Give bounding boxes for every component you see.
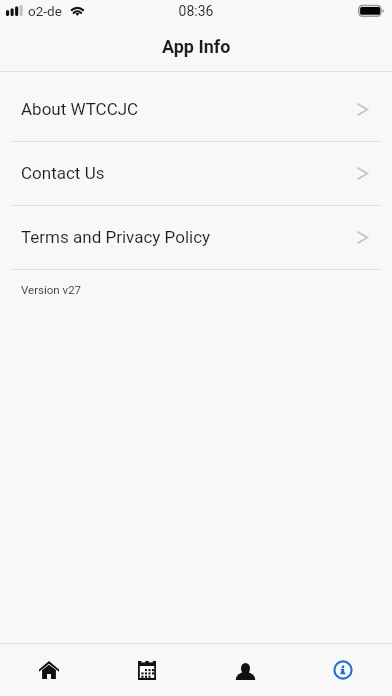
staticText: 08:36 [0,3,392,19]
button[interactable]: Contact Us [0,142,392,205]
staticText: About WTCCJC [21,99,139,119]
staticText: Terms and Privacy Policy [21,227,211,247]
button[interactable]: Home [0,644,98,696]
button[interactable]: About WTCCJC [0,78,392,141]
button[interactable]: App Info [294,644,392,696]
staticText: App Info [162,36,231,57]
staticText: Contact Us [21,163,105,183]
button[interactable]: Profile [196,644,294,696]
button[interactable]: Calendar [98,644,196,696]
staticText: o2-de [28,3,62,19]
button[interactable]: Terms and Privacy Policy [0,206,392,269]
staticText: Version v27 [21,283,82,296]
